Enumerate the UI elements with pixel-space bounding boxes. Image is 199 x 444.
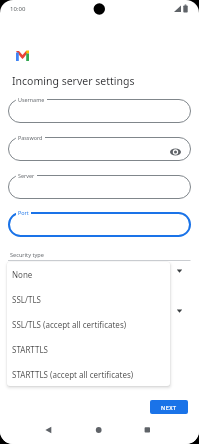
button[interactable]: STARTTLS (accept all certificates) [7,362,170,386]
staticText: Username [18,96,45,103]
button[interactable] [8,137,191,161]
button[interactable] [136,420,158,442]
button[interactable] [8,99,191,123]
staticText: SSL/TLS [12,294,41,305]
staticText: SSL/TLS (accept all certificates) [12,319,127,330]
staticText: None [12,269,33,280]
button[interactable] [8,212,191,237]
button[interactable] [88,420,110,442]
button[interactable]: NEXT [150,400,188,414]
staticText: Security type [10,251,44,259]
button[interactable] [170,148,181,156]
button[interactable]: SSL/TLS [7,287,170,312]
button[interactable] [8,175,191,199]
staticText: NEXT [161,404,177,411]
staticText: Port [18,209,29,216]
staticText: Password [18,134,43,141]
button[interactable]: SSL/TLS (accept all certificates) [7,312,170,337]
staticText: Server [18,172,35,179]
staticText: STARTTLS (accept all certificates) [12,369,134,380]
button[interactable]: None [7,262,170,287]
button[interactable]: STARTTLS [7,337,170,362]
button[interactable] [38,420,60,442]
staticText: Incoming server settings [12,74,135,88]
staticText: STARTTLS [12,344,49,355]
staticText: 10:00 [10,5,26,13]
